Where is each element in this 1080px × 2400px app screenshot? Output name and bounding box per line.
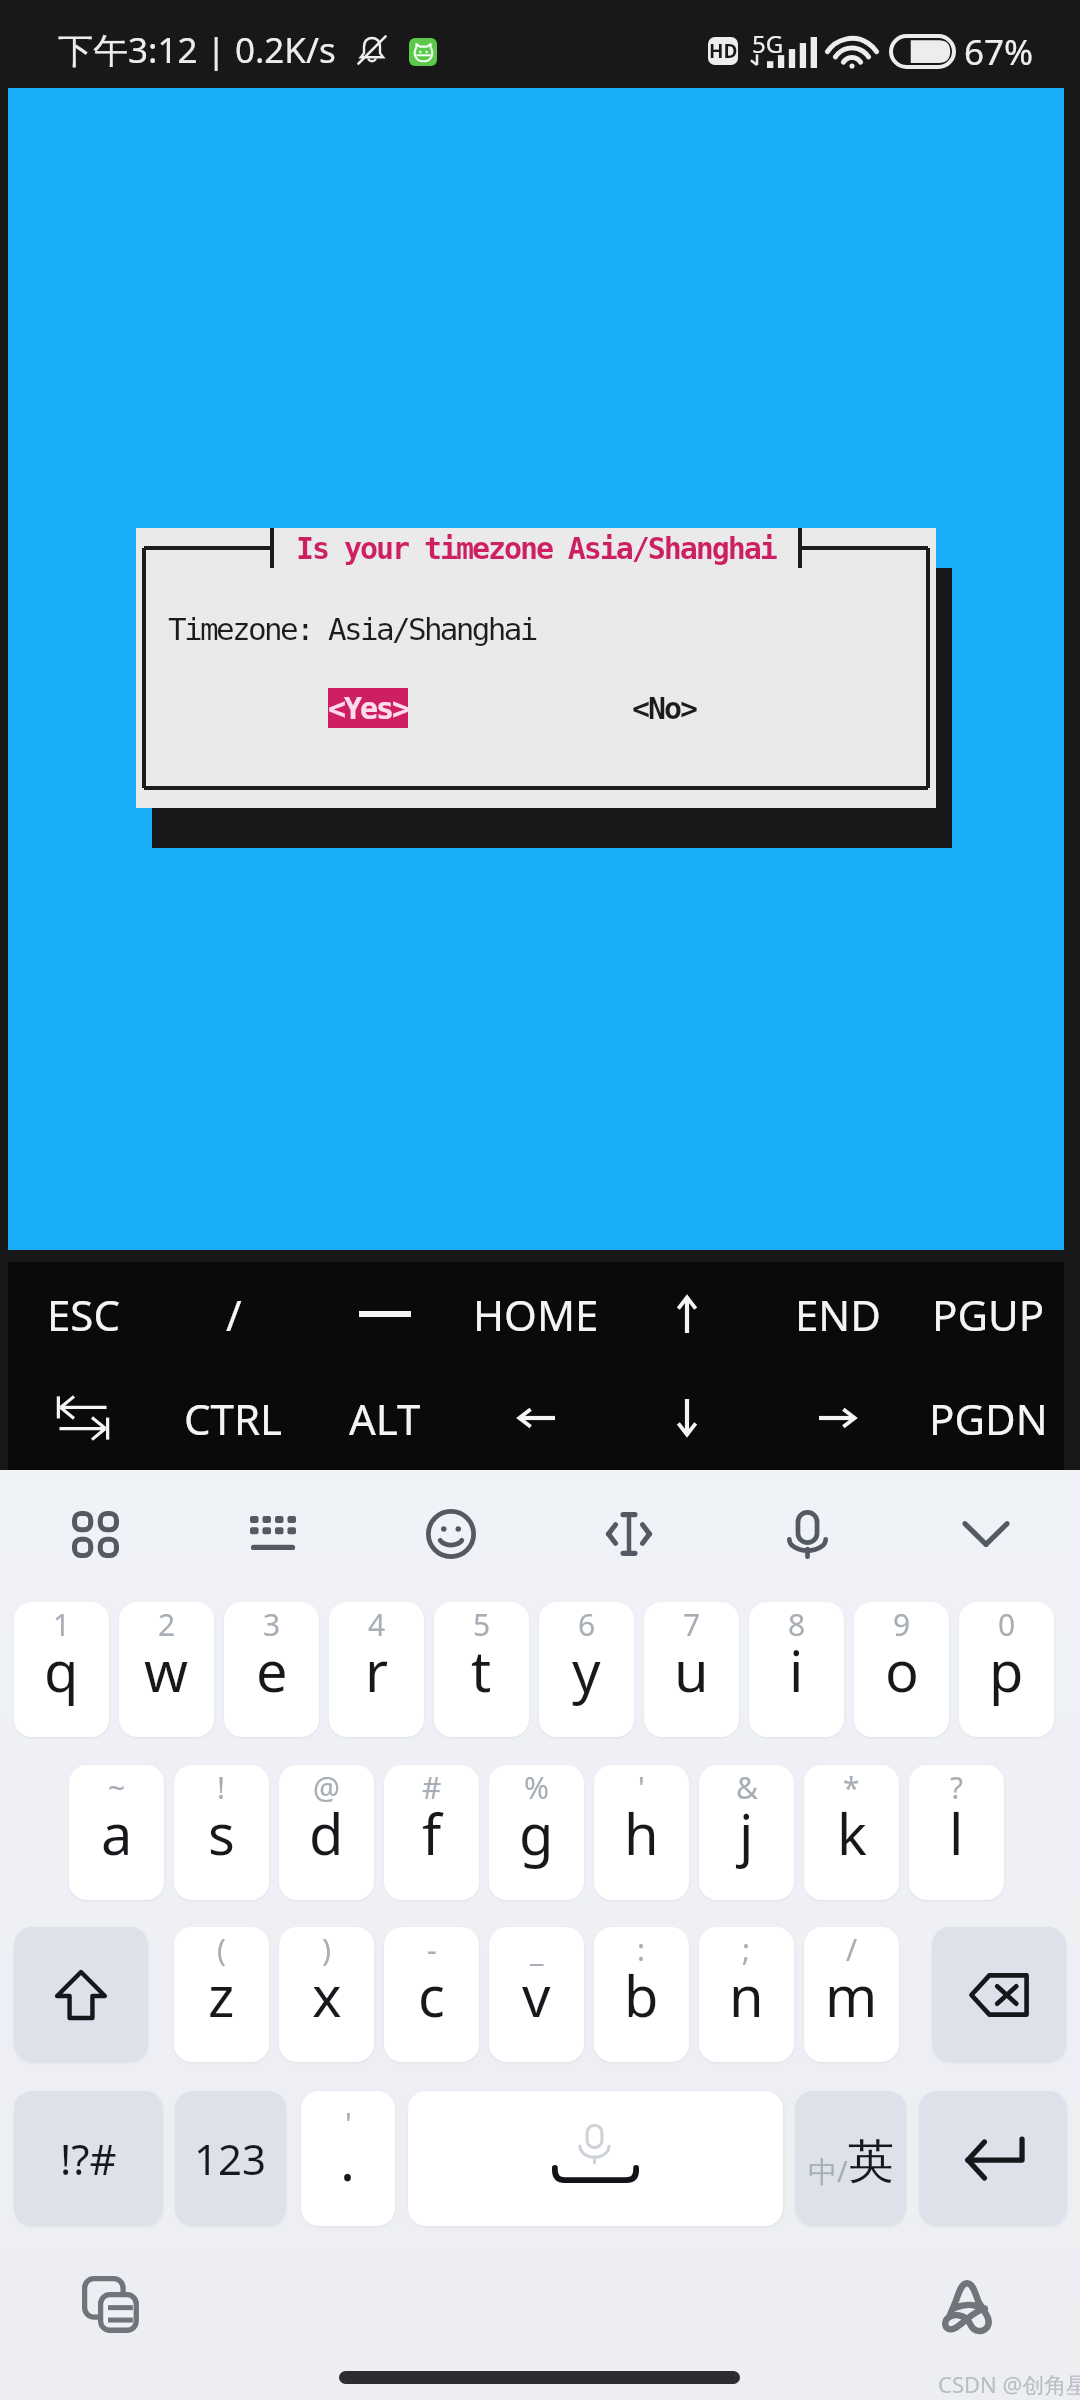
staticText: r [365, 1632, 389, 1708]
button[interactable]: CTRL [158, 1366, 309, 1470]
button[interactable]: Tab [8, 1366, 158, 1470]
button[interactable]: Hide keyboard [941, 1489, 1031, 1579]
button[interactable]: Enter [919, 2091, 1067, 2226]
button[interactable]: Emoji [406, 1489, 496, 1579]
button[interactable]: @ [279, 1765, 374, 1900]
button[interactable]: : [594, 1927, 689, 2062]
button[interactable]: PGUP [913, 1262, 1064, 1366]
button[interactable]: ALT [309, 1366, 460, 1470]
staticText: % [524, 1767, 549, 1808]
button[interactable]: Apps [50, 1489, 140, 1579]
button[interactable]: Text editing [584, 1489, 674, 1579]
button[interactable]: 0 [959, 1602, 1054, 1737]
button[interactable]: 123 [175, 2091, 286, 2226]
button[interactable]: 5 [434, 1602, 529, 1737]
button[interactable]: Shift [14, 1927, 148, 2062]
staticText: CTRL [184, 1390, 283, 1447]
staticText: 英 [848, 2133, 894, 2191]
staticText: z [208, 1957, 235, 2033]
button[interactable]: HOME [460, 1262, 611, 1366]
staticText: b [624, 1957, 659, 2033]
button[interactable]: Space [408, 2091, 783, 2226]
button[interactable]: 1 [14, 1602, 109, 1737]
staticText: ) [322, 1929, 331, 1970]
button[interactable]: PGDN [913, 1366, 1064, 1470]
button[interactable]: Up [611, 1262, 762, 1366]
button[interactable]: % [489, 1765, 584, 1900]
staticText: <No> [632, 691, 696, 726]
button[interactable]: ! [174, 1765, 269, 1900]
button[interactable]: 4 [329, 1602, 424, 1737]
staticText: 下午3:12 | 0.2K/s [58, 26, 336, 74]
button[interactable]: Right [762, 1366, 913, 1470]
staticText: 3 [263, 1604, 281, 1645]
staticText: 2 [158, 1604, 176, 1645]
button[interactable]: END [762, 1262, 913, 1366]
button[interactable]: 9 [854, 1602, 949, 1737]
button[interactable]: # [384, 1765, 479, 1900]
staticText: h [624, 1795, 659, 1871]
staticText: <Yes> [328, 691, 408, 726]
staticText: Timezone: Asia/Shanghai [168, 611, 536, 647]
button[interactable]: <No> [632, 688, 696, 728]
button[interactable]: * [804, 1765, 899, 1900]
button[interactable]: - [384, 1927, 479, 2062]
staticText: w [144, 1632, 189, 1708]
button[interactable]: <Yes> [328, 688, 408, 728]
staticText: PGUP [932, 1286, 1045, 1343]
staticText: d [309, 1795, 344, 1871]
staticText: u [674, 1632, 709, 1708]
button[interactable]: ' [594, 1765, 689, 1900]
button[interactable]: Minus [309, 1262, 460, 1366]
button[interactable]: ' [301, 2091, 395, 2226]
button[interactable]: Clipboard [73, 2267, 153, 2347]
staticText: n [729, 1957, 764, 2033]
staticText: # [422, 1767, 442, 1808]
staticText: _ [530, 1929, 544, 1970]
button[interactable]: Left [460, 1366, 611, 1470]
staticText: a [101, 1795, 133, 1871]
staticText: ~ [108, 1767, 126, 1808]
staticText: 8 [788, 1604, 806, 1645]
button[interactable]: 3 [224, 1602, 319, 1737]
button[interactable]: ? [909, 1765, 1004, 1900]
button[interactable]: Voice input [762, 1489, 852, 1579]
button[interactable]: Down [611, 1366, 762, 1470]
staticText: PGDN [929, 1390, 1048, 1447]
button[interactable]: _ [489, 1927, 584, 2062]
staticText: s [208, 1795, 235, 1871]
staticText: j [739, 1795, 754, 1871]
button[interactable]: 8 [749, 1602, 844, 1737]
staticText: 9 [893, 1604, 911, 1645]
button[interactable]: ESC [8, 1262, 158, 1366]
button[interactable]: / [804, 1927, 899, 2062]
button[interactable]: 7 [644, 1602, 739, 1737]
button[interactable]: ~ [69, 1765, 164, 1900]
button[interactable]: 6 [539, 1602, 634, 1737]
staticText: ' [638, 1767, 645, 1808]
button[interactable]: Keyboard layout [228, 1489, 318, 1579]
button[interactable]: & [699, 1765, 794, 1900]
staticText: & [736, 1767, 758, 1808]
button[interactable]: !?# [14, 2091, 163, 2226]
button[interactable]: ( [174, 1927, 269, 2062]
button[interactable]: 2 [119, 1602, 214, 1737]
staticText: . [340, 2121, 356, 2197]
button[interactable]: Input method [927, 2266, 1007, 2346]
button[interactable]: / [158, 1262, 309, 1366]
staticText: ESC [47, 1286, 120, 1343]
staticText: e [256, 1632, 288, 1708]
button[interactable]: 中/ [795, 2091, 906, 2226]
staticText: y [572, 1632, 601, 1708]
staticText: c [418, 1957, 445, 2033]
staticText: q [44, 1632, 79, 1708]
staticText: CSDN @创角星 [938, 2369, 1080, 2399]
staticText: !?# [60, 2130, 117, 2187]
staticText: x [312, 1957, 342, 2033]
button[interactable]: ; [699, 1927, 794, 2062]
staticText: t [471, 1632, 492, 1708]
button[interactable]: ) [279, 1927, 374, 2062]
staticText: / [226, 1286, 242, 1343]
staticText: ! [217, 1767, 226, 1808]
button[interactable]: Backspace [932, 1927, 1066, 2062]
